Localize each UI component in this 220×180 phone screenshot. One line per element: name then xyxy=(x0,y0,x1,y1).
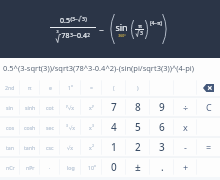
button[interactable]: nCr xyxy=(0,157,20,177)
button[interactable]: tan xyxy=(0,137,20,157)
staticText: x xyxy=(183,121,188,133)
staticText: 5 xyxy=(135,120,141,134)
button[interactable]: 6 xyxy=(150,117,174,137)
staticText: √x xyxy=(68,104,75,111)
staticText: y xyxy=(66,103,68,108)
staticText: nPr xyxy=(26,164,35,171)
button[interactable]: x xyxy=(81,97,102,117)
button[interactable]: sin xyxy=(0,97,20,117)
button[interactable]: 10 xyxy=(81,157,102,177)
staticText: 3 xyxy=(92,123,95,128)
staticText: = xyxy=(206,141,212,153)
staticText: 8 xyxy=(135,100,141,114)
button[interactable]: 0.5^(3-sqrt(3))/sqrt3(78^3-0.4^2)-(sin(p… xyxy=(0,58,220,78)
button[interactable]: 4 xyxy=(102,117,126,137)
button[interactable]: y xyxy=(60,97,81,117)
staticText: ÷ xyxy=(183,101,189,113)
staticText: y xyxy=(92,103,94,108)
button[interactable]: 1 xyxy=(60,78,81,97)
button[interactable]: cot xyxy=(40,97,60,117)
button[interactable]: ) xyxy=(126,78,150,97)
button[interactable]: 2 xyxy=(126,137,150,157)
button[interactable]: ± xyxy=(126,157,150,177)
button[interactable]: ( xyxy=(102,78,126,97)
staticText: ( xyxy=(113,84,115,91)
staticText: 0 xyxy=(111,160,117,174)
button[interactable]: Backspace xyxy=(197,78,220,97)
button[interactable]: - xyxy=(174,137,197,157)
button[interactable]: π xyxy=(20,78,40,97)
staticText: ) xyxy=(137,84,139,91)
staticText: 2nd xyxy=(5,84,15,91)
button[interactable]: 3 xyxy=(150,137,174,157)
button[interactable]: 8 xyxy=(126,97,150,117)
button[interactable]: √x xyxy=(60,137,81,157)
staticText: x xyxy=(71,83,73,88)
staticText: x xyxy=(89,144,92,151)
staticText: 2 xyxy=(135,140,141,154)
button[interactable]: ÷ xyxy=(174,97,197,117)
button[interactable]: 3 xyxy=(60,117,81,137)
staticText: sin xyxy=(115,21,128,33)
button[interactable]: csc xyxy=(40,137,60,157)
staticText: tan xyxy=(6,144,14,151)
button[interactable]: 5 xyxy=(126,117,150,137)
staticText: x xyxy=(89,104,92,111)
button[interactable]: sinh xyxy=(20,97,40,117)
staticText: tanh xyxy=(24,144,36,151)
staticText: 3 xyxy=(82,16,85,23)
staticText: ) xyxy=(85,16,87,23)
staticText: 7 xyxy=(111,100,117,114)
button[interactable]: 0.5 xyxy=(0,0,220,58)
staticText: = xyxy=(90,84,93,91)
button[interactable]: = xyxy=(81,78,102,97)
button[interactable]: x xyxy=(174,117,197,137)
staticText: ± xyxy=(135,160,141,174)
button[interactable]: 0 xyxy=(102,157,126,177)
button[interactable]: x xyxy=(81,137,102,157)
staticText: 2 xyxy=(87,32,90,38)
button[interactable]: 7 xyxy=(102,97,126,117)
staticText: 1 xyxy=(68,84,71,91)
staticText: nCr xyxy=(6,164,15,171)
button[interactable]: + xyxy=(174,157,197,177)
button[interactable]: C xyxy=(197,97,220,117)
staticText: 10 xyxy=(88,164,94,171)
staticText: √x xyxy=(67,144,74,151)
staticText: 3 xyxy=(56,29,59,34)
staticText: csc xyxy=(46,144,54,151)
button[interactable]: cosh xyxy=(20,117,40,137)
staticText: x xyxy=(89,124,92,131)
button[interactable]: sec xyxy=(40,117,60,137)
staticText: x xyxy=(94,163,96,168)
staticText: 6 xyxy=(159,120,165,134)
staticText: −0.4 xyxy=(73,31,87,41)
button[interactable]: log xyxy=(60,157,81,177)
button[interactable]: e xyxy=(40,78,60,97)
staticText: 78 xyxy=(61,31,70,41)
button[interactable]: = xyxy=(197,137,220,157)
button[interactable]: 9 xyxy=(150,97,174,117)
staticText: - xyxy=(184,141,187,153)
button[interactable]: cos xyxy=(0,117,20,137)
staticText: 2 xyxy=(92,143,95,148)
button[interactable]: 1 xyxy=(102,137,126,157)
staticText: 4 xyxy=(111,120,117,134)
staticText: cosh xyxy=(24,124,36,131)
staticText: (4−π) xyxy=(150,20,162,27)
staticText: 3 xyxy=(66,123,69,128)
staticText: 3 xyxy=(159,140,165,154)
button[interactable]: · xyxy=(40,157,60,177)
button[interactable]: x xyxy=(81,117,102,137)
staticText: π xyxy=(138,22,142,29)
staticText: (3− xyxy=(70,16,78,23)
button[interactable]: tanh xyxy=(20,137,40,157)
staticText: 0.5 xyxy=(60,16,70,26)
staticText: log xyxy=(67,164,75,171)
staticText: sec xyxy=(46,124,54,131)
button[interactable]: 2nd xyxy=(0,78,20,97)
button[interactable]: . xyxy=(150,157,174,177)
staticText: 3 xyxy=(140,30,143,37)
staticText: 9 xyxy=(159,100,165,114)
button[interactable]: nPr xyxy=(20,157,40,177)
